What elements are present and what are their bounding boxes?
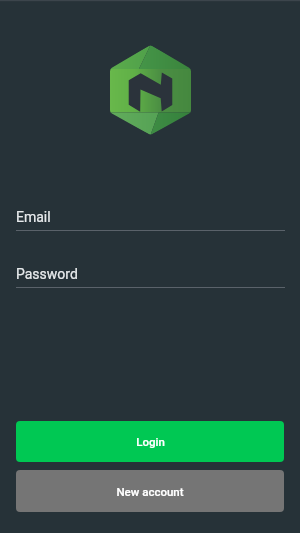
staticText: Email	[16, 209, 51, 225]
staticText: Login	[136, 435, 165, 448]
button[interactable]: New account	[16, 470, 284, 512]
staticText: Password	[16, 266, 78, 282]
button[interactable]: Login	[16, 421, 284, 462]
staticText: New account	[116, 485, 184, 498]
